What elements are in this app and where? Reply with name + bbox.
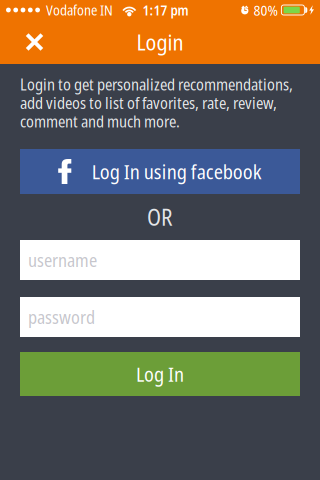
staticText: 80% — [253, 0, 277, 20]
staticText: Vodafone IN — [46, 0, 113, 20]
staticText: Login — [136, 27, 183, 57]
button[interactable]: Close — [0, 20, 69, 64]
button[interactable]: Log In — [20, 352, 300, 396]
staticText: 1:17 pm — [143, 0, 189, 20]
staticText: Log In — [136, 360, 184, 388]
staticText: OR — [147, 202, 173, 232]
staticText: username — [28, 248, 97, 272]
staticText: password — [28, 305, 95, 329]
button[interactable]: Log In using facebook — [20, 149, 300, 194]
staticText: Login to get personalized recommendation… — [20, 75, 293, 131]
staticText: Log In using facebook — [92, 158, 262, 185]
